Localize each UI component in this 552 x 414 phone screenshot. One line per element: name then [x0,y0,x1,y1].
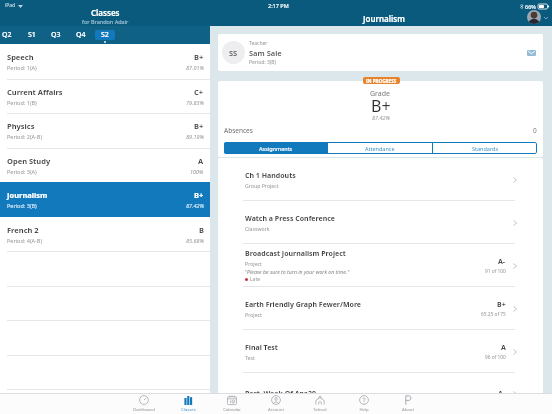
staticText: Q3 [51,30,61,40]
staticText: Earth Friendly Graph Fewer/More [245,300,362,310]
staticText: Classwork [245,225,270,232]
staticText: Teacher [249,40,268,47]
staticText: B [199,225,204,235]
staticText: Classes [91,7,120,18]
button[interactable]: Account [257,394,295,414]
button[interactable]: Profile [527,10,541,24]
button[interactable]: School [301,394,339,414]
button[interactable]: Assignments [224,142,327,154]
button[interactable]: Q3 [45,29,67,41]
staticText: Absences [224,126,253,135]
staticText: Current Affairs [7,87,63,97]
button[interactable]: Standards [433,142,537,154]
button[interactable]: Email teacher [523,45,539,61]
staticText: 66% [525,3,536,10]
staticText: Period: 1(A) [7,64,37,71]
staticText: Attendance [365,145,395,152]
button[interactable]: Speech [0,44,210,79]
staticText: IN PROGRESS [366,78,397,84]
staticText: 79.83% [186,99,204,106]
button[interactable]: Classes [169,394,207,414]
staticText: for Brandon Adair [82,18,129,25]
staticText: A- [498,257,506,267]
staticText: S2 [101,30,109,40]
staticText: Assignments [259,145,293,152]
staticText: Late [250,276,261,283]
staticText: Period: 4(A-B) [7,237,43,244]
staticText: Grade [370,89,391,99]
button[interactable]: Broadcast Journalism Project [218,244,543,287]
staticText: B+ [194,190,204,200]
staticText: Account [268,407,284,413]
staticText: Ch 1 Handouts [245,171,296,181]
button[interactable]: S1 [21,29,43,41]
staticText: B+ [497,300,506,310]
staticText: 87.01% [186,64,204,71]
staticText: 87.42% [186,202,204,209]
staticText: B+ [194,52,204,62]
staticText: B+ [194,121,204,131]
staticText: 2:17 PM [268,2,289,9]
button[interactable]: Calendar [213,394,251,414]
button[interactable]: Watch a Press Conference [218,201,543,244]
staticText: Open Study [7,156,51,166]
button[interactable]: SS [218,34,543,71]
staticText: SS [229,48,238,58]
staticText: 89.19% [186,133,204,140]
staticText: 0 [533,126,537,135]
button[interactable]: Open Study [0,148,210,183]
staticText: B+ [371,95,391,117]
button[interactable]: Earth Friendly Graph Fewer/More [218,287,543,330]
staticText: Q2 [2,30,12,40]
button[interactable]: Final Test [218,330,543,373]
staticText: 85.68% [186,237,204,244]
button[interactable]: Ch 1 Handouts [218,158,543,201]
staticText: Journalism [363,13,405,24]
staticText: A [501,343,506,353]
staticText: Period: 1(B) [7,99,37,106]
staticText: Physics [7,121,35,131]
staticText: Classes [181,407,196,413]
button[interactable]: Current Affairs [0,79,210,114]
staticText: Period: 2(A-B) [7,133,43,140]
staticText: School [313,407,327,413]
staticText: Help [359,407,369,413]
staticText: Calendar [223,407,241,413]
staticText: A [198,156,204,166]
staticText: Dashboard [133,407,155,413]
staticText: Watch a Press Conference [245,214,336,224]
staticText: 100% [190,168,204,175]
staticText: 65.25 of 75 [481,311,506,318]
button[interactable]: Attendance [328,142,432,154]
button[interactable]: Physics [0,113,210,148]
staticText: Speech [7,52,34,62]
staticText: C+ [194,87,204,97]
button[interactable]: Help [345,394,383,414]
button[interactable]: Q2 [0,29,18,41]
staticText: Period: 3(B) [7,202,37,209]
staticText: Part. Week Of Apr.29 [245,389,316,399]
staticText: Project [245,311,262,318]
button[interactable]: About [389,394,427,414]
button[interactable]: S2 [94,29,116,41]
staticText: 87.42% [372,114,390,121]
staticText: Sam Sale [249,48,282,58]
button[interactable]: Part. Week Of Apr.29 [218,373,543,414]
staticText: Group Project [245,182,279,189]
staticText: "Please be sure to turn in your work on … [245,268,350,275]
staticText: 96 of 100 [485,354,506,361]
staticText: Standards [472,145,499,152]
button[interactable]: Dashboard [125,394,163,414]
staticText: Project [245,260,262,267]
staticText: Period: 3(A) [7,168,37,175]
staticText: 91 of 100 [485,268,506,275]
button[interactable]: Q4 [70,29,92,41]
staticText: Q4 [76,30,86,40]
button[interactable]: Journalism [0,182,210,217]
staticText: Test [245,354,255,361]
staticText: Broadcast Journalism Project [245,249,346,259]
staticText: A- [498,389,506,399]
staticText: Journalism [7,190,48,200]
button[interactable]: French 2 [0,217,210,252]
staticText: Period: 3(B) [249,59,277,66]
